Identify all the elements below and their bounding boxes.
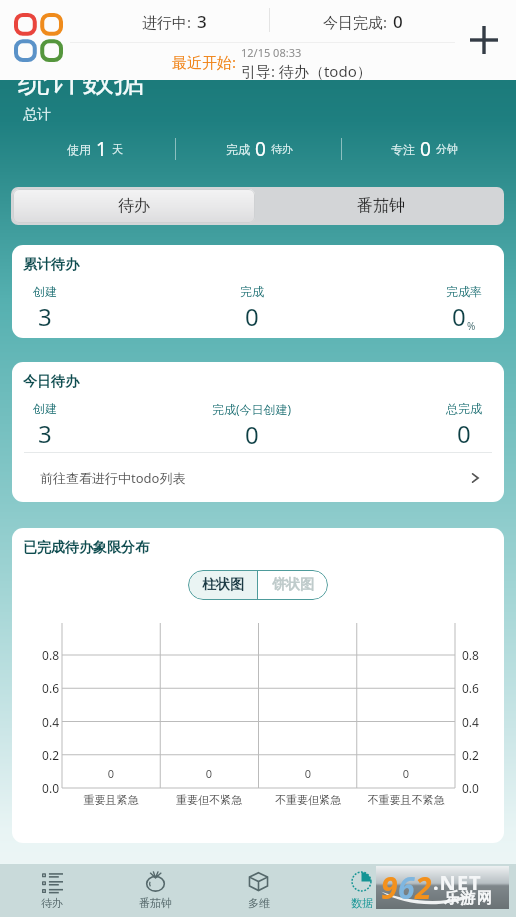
staticText: 0.8 [34,647,59,663]
button[interactable]: 使用 [15,136,175,162]
staticText: 待办 [271,142,293,156]
button[interactable]: 完成 [178,136,341,162]
staticText: 已完成待办象限分布 [23,539,149,557]
staticText: 进行中: [142,12,192,32]
button[interactable]: 进行中: [114,9,234,33]
staticText: 创建 [33,284,57,299]
staticText: 重要但不紧急 [159,793,259,807]
staticText: 前往查看进行中todo列表 [40,469,186,487]
staticText: 0 [194,766,224,781]
staticText: 0.0 [462,780,487,796]
staticText: % [467,319,476,333]
staticText: 累计待办 [23,256,79,274]
button[interactable]: 我的 [413,864,516,917]
staticText: 0.6 [34,680,59,696]
staticText: 待办 [41,896,63,910]
staticText: 分钟 [436,142,458,156]
staticText: 创建 [33,401,57,416]
staticText: 0.2 [34,747,59,763]
button[interactable]: 待办 [13,189,255,223]
button[interactable]: 番茄钟 [257,187,504,225]
staticText: 9 [381,867,398,908]
staticText: 乐游网 [444,889,494,908]
staticText: 总计 [23,106,51,124]
staticText: 今日待办 [23,373,79,391]
staticText: 不重要但紧急 [258,793,358,807]
staticText: 0 [245,300,259,333]
staticText: 0.2 [462,747,487,763]
staticText: 0.8 [462,647,487,663]
staticText: 专注 [391,142,415,157]
button[interactable]: 多维 [207,864,310,917]
staticText: 3 [38,300,52,333]
staticText: 2 [415,867,432,908]
button[interactable]: 数据 [310,864,413,917]
staticText: 0.6 [462,680,487,696]
staticText: 6 [398,867,415,908]
staticText: 统计数据 [18,60,146,100]
staticText: 数据 [351,896,373,910]
staticText: 番茄钟 [357,196,405,216]
staticText: 完成 [240,284,264,299]
button[interactable]: 前往查看进行中todo列表 [12,453,504,502]
staticText: 0 [245,418,259,451]
staticText: 0 [457,417,471,450]
staticText: 使用 [67,142,91,157]
button[interactable]: 专注 [344,136,504,162]
staticText: 柱状图 [202,576,244,594]
staticText: 0 [420,136,431,162]
staticText: 引导: 待办（todo） [241,61,372,81]
staticText: 3 [197,10,207,33]
staticText: 1 [96,136,107,162]
staticText: .NET [433,869,482,896]
staticText: 0 [391,766,421,781]
staticText: 0 [452,300,466,333]
staticText: 0.4 [34,714,59,730]
staticText: 12/15 08:33 [241,45,302,60]
staticText: 总完成 [446,401,482,416]
button[interactable]: 今日完成: [303,9,423,33]
staticText: 今日完成: [323,12,388,32]
staticText: 完成(今日创建) [212,401,292,417]
staticText: 重要且紧急 [61,793,161,807]
staticText: 天 [112,142,123,156]
staticText: 完成率 [446,284,482,299]
staticText: 待办 [118,196,150,216]
staticText: 最近开始: [172,52,237,72]
button[interactable]: 饼状图 [258,570,328,600]
staticText: 不重要且不紧急 [356,793,456,807]
staticText: 0.0 [34,780,59,796]
staticText: 0 [293,766,323,781]
staticText: 完成 [226,142,250,157]
button[interactable]: 最近开始: [172,45,372,81]
button[interactable]: 待办 [0,864,104,917]
staticText: 3 [38,417,52,450]
staticText: 0 [96,766,126,781]
staticText: 饼状图 [272,576,314,594]
staticText: 0 [255,136,266,162]
staticText: 番茄钟 [139,896,172,910]
staticText: 我的 [454,896,476,910]
staticText: 0 [393,10,403,33]
staticText: 多维 [248,896,270,910]
button[interactable]: 柱状图 [188,570,257,600]
staticText: 0.4 [462,714,487,730]
button[interactable]: Add [460,16,508,64]
button[interactable]: 番茄钟 [104,864,207,917]
